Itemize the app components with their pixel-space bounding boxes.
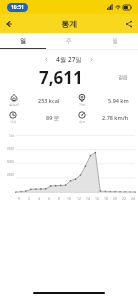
staticText: 16 — [95, 196, 99, 201]
staticText: 거리 — [79, 103, 86, 107]
button[interactable]: Previous day — [41, 54, 52, 65]
staticText: 2 — [28, 196, 30, 201]
staticText: 5000 — [0, 160, 14, 164]
staticText: 주 — [66, 37, 72, 45]
button[interactable]: 거리 — [69, 93, 138, 108]
staticText: 속도 — [79, 120, 86, 124]
button[interactable]: Next day — [86, 54, 97, 65]
button[interactable]: Back — [0, 15, 18, 33]
button[interactable]: 속도 — [69, 110, 138, 125]
staticText: 18 — [104, 196, 108, 201]
button[interactable]: 월 — [92, 33, 138, 48]
button[interactable]: 칼로리 — [0, 93, 69, 108]
staticText: 24 — [131, 196, 135, 201]
staticText: 253 kcal — [38, 97, 60, 104]
staticText: 4월 27일 — [56, 55, 82, 64]
staticText: 5.94 km — [108, 97, 129, 104]
staticText: 14 — [86, 196, 90, 201]
staticText: 2.78 km/h — [102, 114, 129, 121]
staticText: 4 — [38, 196, 40, 201]
button[interactable]: Share — [120, 15, 138, 33]
staticText: 통계 — [61, 19, 77, 29]
staticText: 20 — [113, 196, 117, 201]
staticText: 1만 — [0, 134, 14, 138]
button[interactable]: 시간 — [0, 110, 69, 125]
staticText: 22 — [122, 196, 126, 201]
staticText: 시간 — [10, 120, 17, 124]
staticText: 0 — [18, 196, 20, 201]
staticText: 89 분 — [46, 114, 60, 122]
staticText: 2500 — [0, 173, 14, 177]
button[interactable]: 일 — [0, 33, 46, 48]
staticText: 10 — [67, 196, 71, 201]
staticText: 7,611 — [39, 66, 83, 88]
staticText: 월 — [112, 37, 118, 45]
button[interactable]: 주 — [46, 33, 92, 48]
staticText: 걸음 — [118, 74, 128, 80]
staticText: 10:51 — [11, 4, 24, 11]
staticText: 6 — [48, 196, 50, 201]
staticText: 8 — [58, 196, 60, 201]
staticText: 칼로리 — [9, 103, 19, 107]
staticText: 7500 — [0, 147, 14, 151]
staticText: 일 — [20, 37, 26, 45]
staticText: 12 — [77, 196, 81, 201]
